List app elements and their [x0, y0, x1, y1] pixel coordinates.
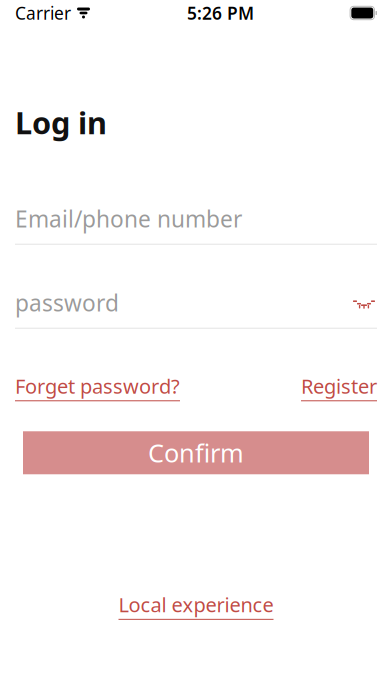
button[interactable]: Show password	[351, 291, 377, 315]
staticText: Log in	[15, 102, 107, 143]
staticText: Carrier	[15, 1, 71, 24]
button[interactable]: Confirm	[23, 431, 369, 474]
button[interactable]: Local experience	[118, 591, 273, 620]
staticText: Local experience	[118, 591, 273, 618]
staticText: Register	[301, 373, 377, 399]
staticText: password	[15, 288, 119, 318]
staticText: Email/phone number	[15, 204, 242, 234]
staticText: Forget password?	[15, 373, 180, 399]
staticText: Confirm	[148, 436, 244, 470]
staticText: 5:26 PM	[187, 1, 254, 24]
button[interactable]: Register	[301, 373, 377, 401]
button[interactable]: Forget password?	[15, 373, 180, 401]
